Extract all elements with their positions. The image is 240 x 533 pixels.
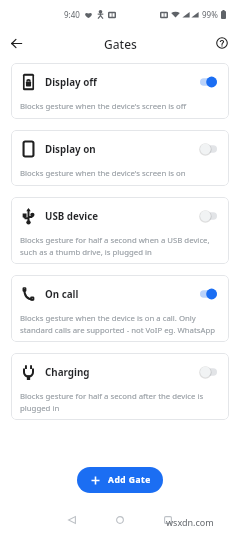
staticText: Blocks gesture when the device's screen … <box>20 101 187 112</box>
staticText: Gates <box>104 36 137 52</box>
button[interactable]: Toggle <box>200 366 217 378</box>
button[interactable]: Toggle <box>200 210 217 222</box>
staticText: Blocks gesture when the device's screen … <box>20 168 186 179</box>
staticText: Blocks gesture for half a second when a … <box>20 235 218 257</box>
button[interactable]: Display off <box>11 63 229 119</box>
staticText: On call <box>45 288 79 301</box>
button[interactable]: Toggle <box>200 143 217 155</box>
staticText: Display off <box>45 76 97 89</box>
button[interactable]: Toggle <box>200 76 217 88</box>
button[interactable]: Home <box>108 508 132 532</box>
button[interactable]: Toggle <box>200 288 217 300</box>
staticText: 99% <box>202 9 218 20</box>
staticText: USB device <box>45 210 99 223</box>
button[interactable]: Recent apps <box>156 508 180 532</box>
button[interactable]: Charging <box>11 353 229 420</box>
button[interactable]: Display on <box>11 130 229 186</box>
staticText: Display on <box>45 143 96 156</box>
staticText: Add Gate <box>108 474 151 486</box>
button[interactable]: Back <box>60 508 84 532</box>
staticText: Blocks gesture when the device is on a c… <box>20 313 218 335</box>
button[interactable]: Add Gate <box>77 467 163 493</box>
staticText: 9:40 <box>64 9 80 20</box>
button[interactable]: On call <box>11 275 229 342</box>
button[interactable]: USB device <box>11 197 229 264</box>
button[interactable]: Help <box>211 32 233 54</box>
staticText: wsxdn.com <box>166 516 214 528</box>
staticText: Charging <box>45 366 90 379</box>
button[interactable]: Back <box>5 32 27 54</box>
staticText: Blocks gesture for half a second after t… <box>20 391 218 413</box>
